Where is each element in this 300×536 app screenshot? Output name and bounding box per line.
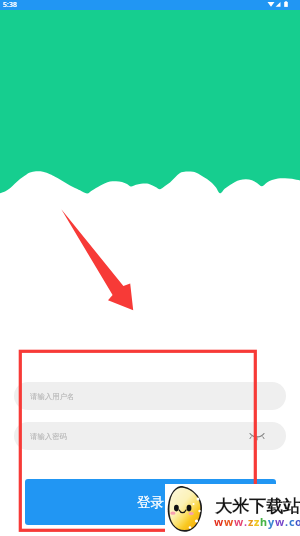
staticText: y: [268, 514, 275, 529]
staticText: .: [285, 514, 289, 529]
staticText: o: [295, 514, 300, 529]
button[interactable]: 请输入密码: [14, 422, 286, 450]
staticText: w: [224, 514, 234, 529]
button[interactable]: 登录: [25, 479, 276, 525]
staticText: 请输入用户名: [30, 392, 75, 401]
staticText: w: [214, 514, 224, 529]
staticText: .: [244, 514, 248, 529]
button[interactable]: 请输入用户名: [14, 382, 286, 410]
staticText: 大米下载站: [215, 496, 300, 517]
staticText: 登录: [137, 494, 164, 511]
staticText: z: [254, 514, 260, 529]
staticText: h: [260, 514, 268, 529]
staticText: z: [248, 514, 254, 529]
staticText: c: [289, 514, 295, 529]
staticText: 5:38: [3, 0, 17, 10]
staticText: w: [234, 514, 244, 529]
staticText: 请输入密码: [30, 432, 67, 441]
button[interactable]: Show password: [247, 426, 267, 446]
staticText: w: [275, 514, 285, 529]
